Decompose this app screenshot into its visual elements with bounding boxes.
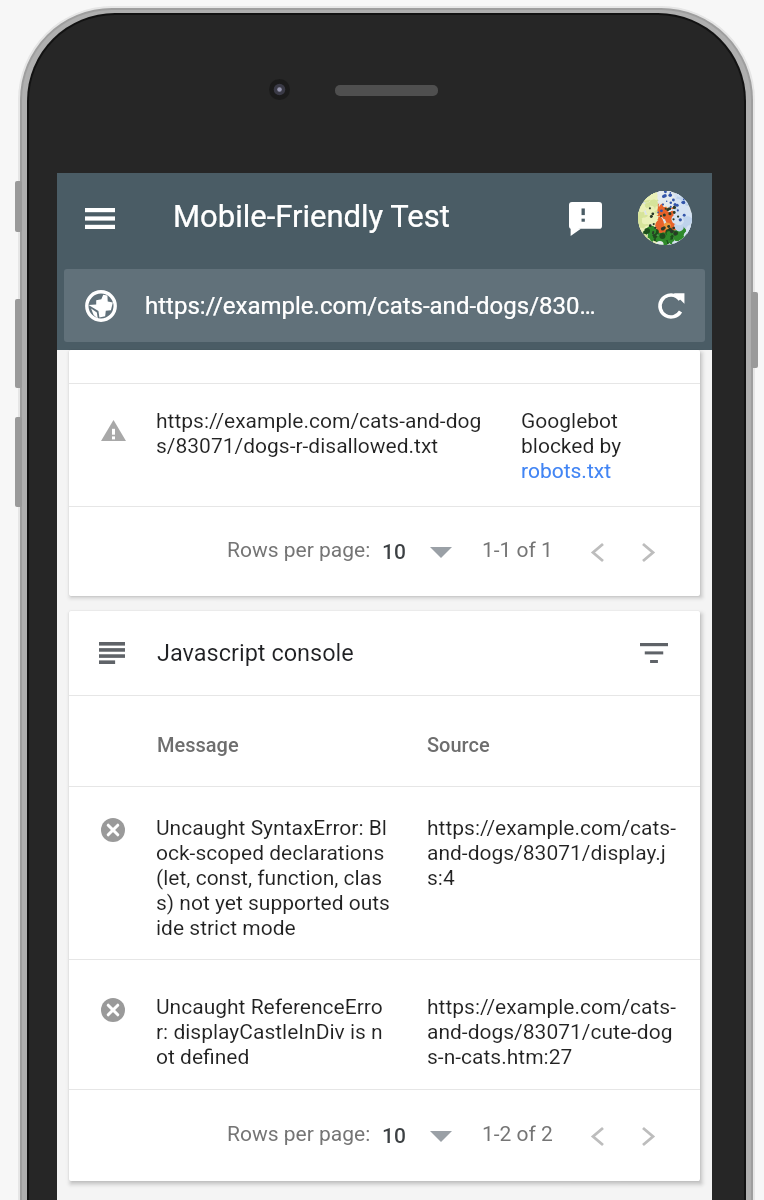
staticText: blocked by	[521, 434, 622, 459]
staticText: s/83071/dogs-r-disallowed.txt	[156, 434, 439, 459]
staticText: s) not yet supported outs	[156, 891, 390, 916]
staticText: Googlebot	[521, 409, 618, 434]
staticText: 1-2 of 2	[482, 1122, 553, 1147]
staticText: r: displayCastleInDiv is n	[156, 1020, 383, 1045]
staticText: Message	[157, 733, 239, 756]
button[interactable]: Filter	[629, 628, 679, 678]
button[interactable]: Menu	[74, 192, 126, 244]
button[interactable]: Reload	[644, 279, 698, 333]
staticText: https://example.com/cats-and-dog	[156, 409, 482, 434]
staticText: Mobile-Friendly Test	[173, 198, 450, 234]
button[interactable]: https://example.com/cats-and-dogs/830…	[64, 269, 705, 342]
staticText: Uncaught ReferenceErro	[156, 995, 383, 1020]
staticText: ock-scoped declarations	[156, 841, 385, 866]
button[interactable]: 10	[382, 530, 458, 574]
button[interactable]: https://example.com/cats-and-dog	[69, 384, 700, 506]
staticText: https://example.com/cats-	[427, 995, 676, 1020]
staticText: Rows per page:	[227, 538, 371, 563]
staticText: https://example.com/cats-and-dogs/830…	[145, 292, 596, 320]
staticText: and-dogs/83071/cute-dog	[427, 1020, 673, 1045]
staticText: and-dogs/83071/display.j	[427, 841, 666, 866]
staticText: s:4	[427, 866, 455, 891]
staticText: Javascript console	[157, 639, 354, 667]
button[interactable]: Send feedback	[555, 189, 615, 249]
button[interactable]: robots.txt	[521, 459, 612, 484]
staticText: (let, const, function, clas	[156, 866, 382, 891]
staticText: s-n-cats.htm:27	[427, 1045, 573, 1070]
staticText: Uncaught SyntaxError: Bl	[156, 816, 387, 841]
staticText: 1-1 of 1	[482, 538, 553, 563]
staticText: ot defined	[156, 1045, 250, 1070]
staticText: 10	[382, 1124, 406, 1149]
staticText: 10	[382, 540, 406, 565]
staticText: Source	[427, 733, 490, 756]
button[interactable]: Next page	[626, 530, 670, 574]
button[interactable]: Account	[638, 191, 692, 245]
button[interactable]: Previous page	[576, 530, 620, 574]
staticText: ide strict mode	[156, 916, 296, 941]
button[interactable]: Uncaught ReferenceErro	[69, 960, 700, 1089]
button[interactable]: Next page	[626, 1114, 670, 1158]
staticText: https://example.com/cats-	[427, 816, 676, 841]
button[interactable]: Previous page	[576, 1114, 620, 1158]
button[interactable]: 10	[382, 1114, 458, 1158]
button[interactable]: Uncaught SyntaxError: Bl	[69, 787, 700, 959]
staticText: Rows per page:	[227, 1122, 371, 1147]
